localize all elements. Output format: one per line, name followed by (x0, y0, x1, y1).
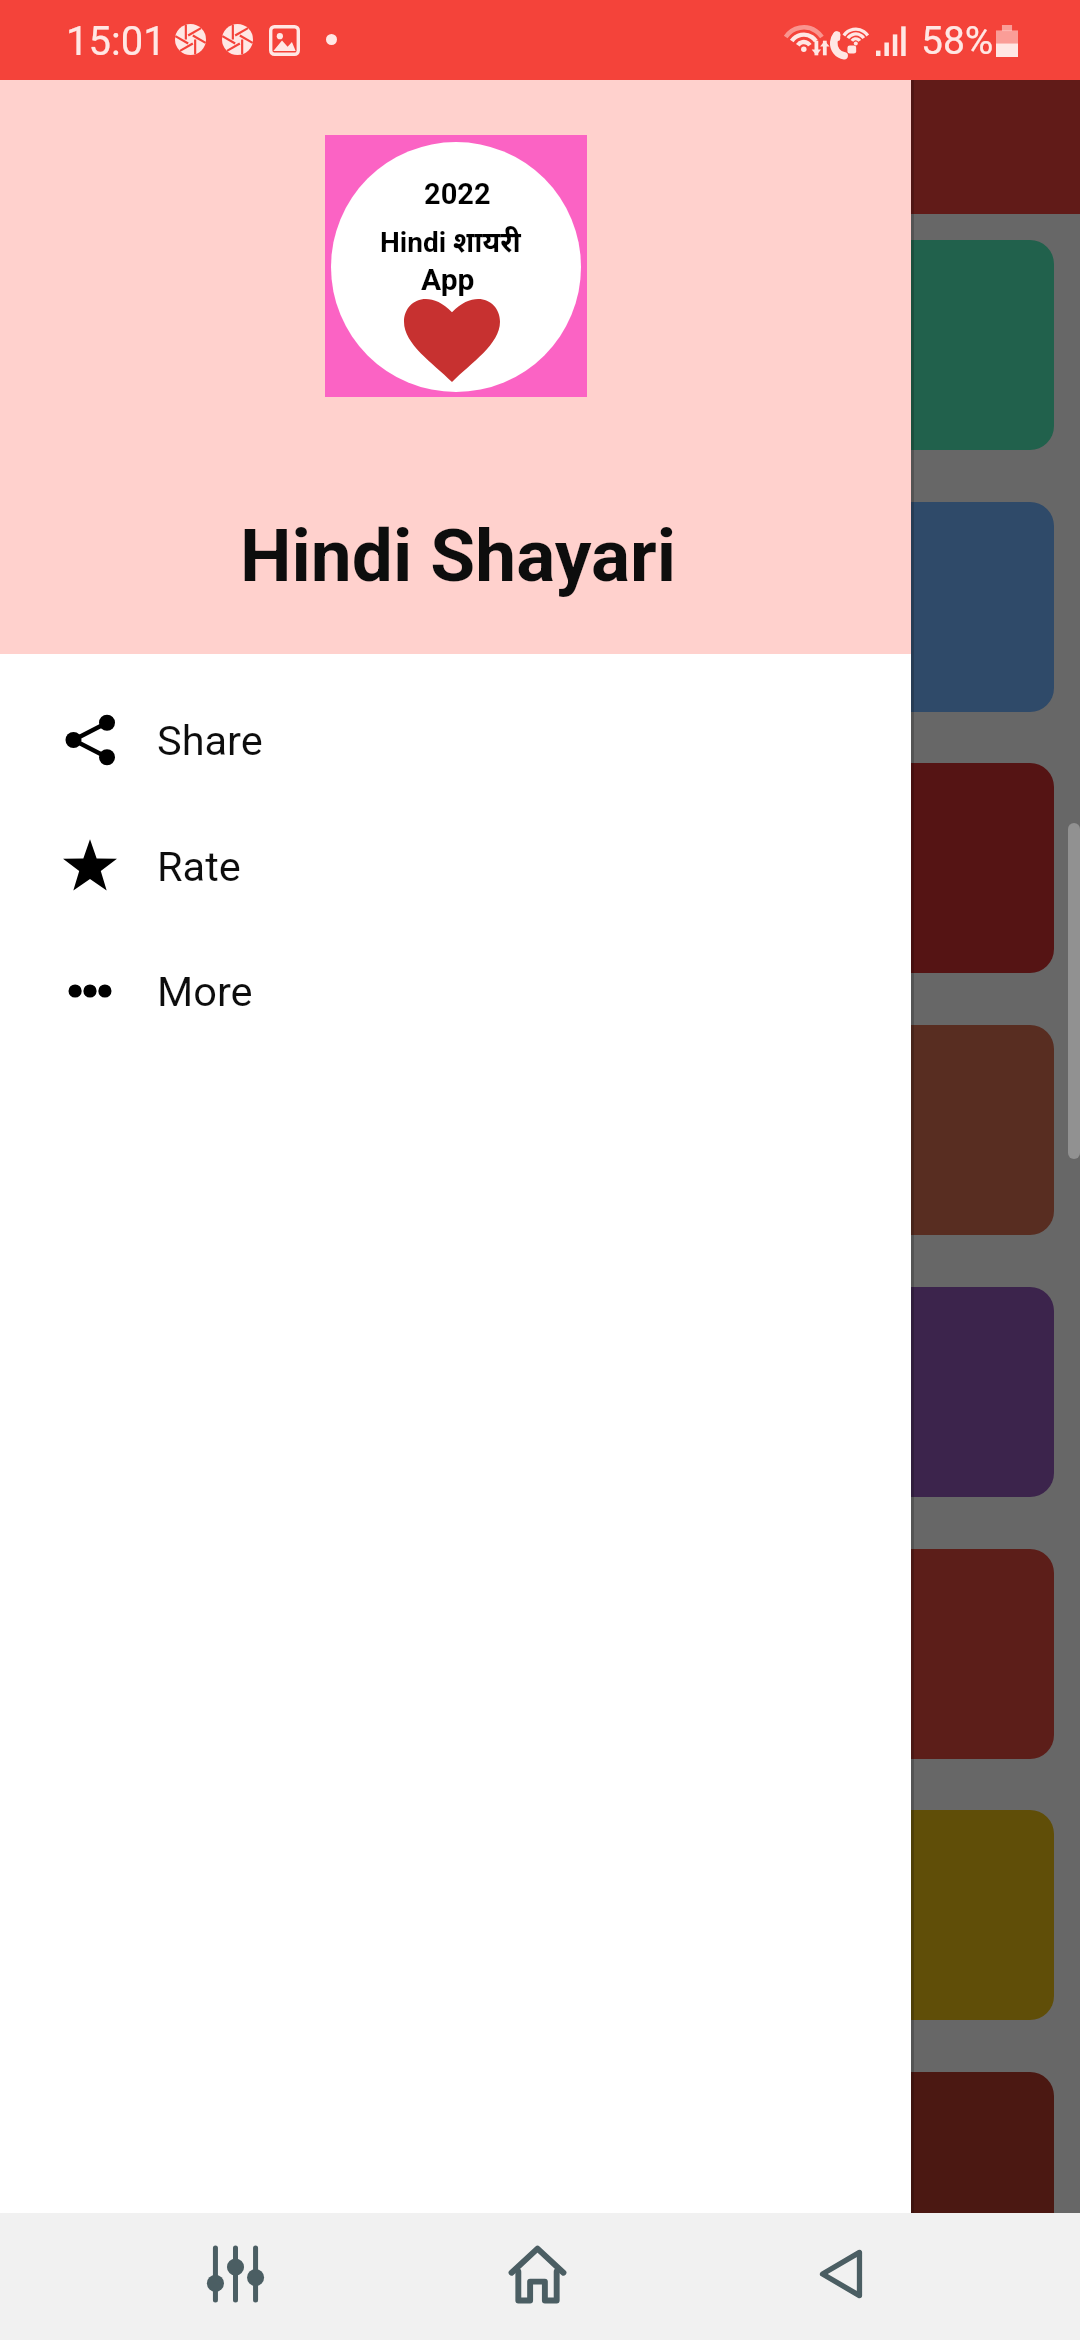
button[interactable] (28, 763, 1054, 973)
staticText: 58% (921, 18, 994, 64)
staticText: Rate (157, 842, 241, 891)
button[interactable] (28, 1810, 1054, 2020)
button[interactable] (28, 2072, 1054, 2282)
button[interactable] (28, 1025, 1054, 1235)
staticText: App (421, 262, 475, 297)
staticText: Hindi शायरी (380, 222, 521, 260)
button[interactable]: Back (781, 2214, 901, 2334)
button[interactable]: More (0, 928, 911, 1054)
button[interactable]: Recent apps (175, 2214, 295, 2334)
staticText: 2022 (424, 177, 491, 211)
button[interactable] (28, 1287, 1054, 1497)
button[interactable]: Share (0, 677, 911, 803)
staticText: More (157, 967, 253, 1016)
button[interactable]: Home (477, 2214, 597, 2334)
button[interactable] (28, 502, 1054, 712)
button[interactable]: Rate (0, 803, 911, 929)
button[interactable] (28, 240, 1054, 450)
button[interactable] (28, 1549, 1054, 1759)
staticText: 15:01 (66, 18, 166, 65)
staticText: Share (157, 716, 263, 765)
staticText: Hindi Shayari (240, 513, 677, 599)
